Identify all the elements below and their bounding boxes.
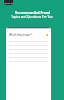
staticText: Recommended Fraud [15, 10, 50, 14]
button[interactable]: Clear all [4, 0, 13, 5]
staticText: Which fraud topic? [9, 33, 32, 37]
staticText: Topics and Questions For You [11, 15, 53, 19]
staticText: Clear all [4, 1, 13, 4]
